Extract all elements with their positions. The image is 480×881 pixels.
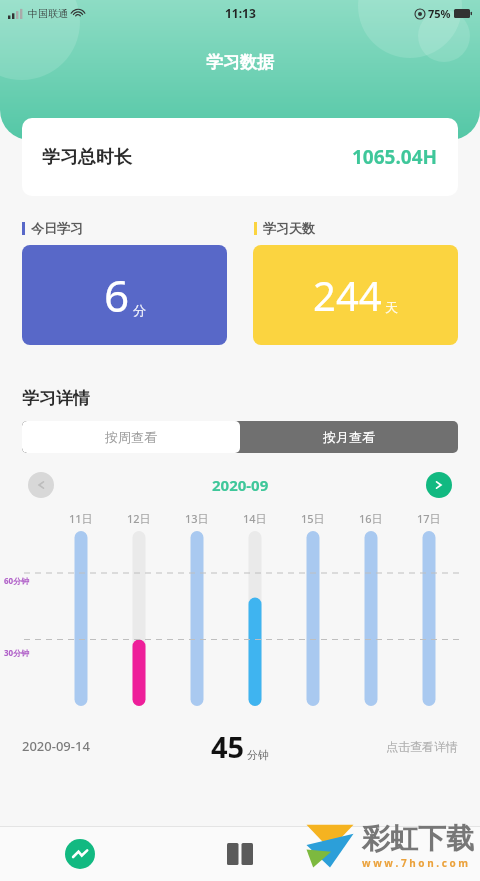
button[interactable]: 6 (22, 245, 227, 345)
button[interactable]: 2020-09-14 (22, 724, 458, 768)
staticText: 1065.04H (352, 144, 438, 170)
staticText: 中国联通 (28, 7, 68, 20)
button[interactable]: Previous month (28, 472, 54, 498)
staticText: 学习总时长 (42, 146, 132, 169)
staticText: w w w . 7 h o n . c o m (362, 856, 469, 870)
staticText: 点击查看详情 (386, 739, 458, 754)
staticText: 按月查看 (323, 429, 375, 445)
button[interactable]: 按周查看 (22, 421, 240, 453)
staticText: 分钟 (247, 748, 269, 762)
staticText: 天 (385, 299, 398, 315)
staticText: 彩虹下载 (362, 821, 474, 856)
staticText: 60分钟 (4, 575, 30, 586)
button[interactable]: Statistics (0, 827, 160, 881)
button[interactable]: Next month (426, 472, 452, 498)
staticText: 分 (133, 302, 146, 318)
button[interactable]: 学习总时长 (22, 118, 458, 196)
staticText: 学习详情 (22, 388, 90, 409)
staticText: 75% (428, 6, 451, 21)
button[interactable]: 244 (253, 245, 458, 345)
button[interactable] (320, 827, 480, 881)
staticText: 17日 (417, 511, 441, 526)
staticText: 16日 (359, 511, 383, 526)
staticText: 2020-09-14 (22, 737, 90, 755)
staticText: 244 (313, 268, 382, 322)
button[interactable]: Books (160, 827, 320, 881)
staticText: 15日 (301, 511, 325, 526)
staticText: 学习数据 (206, 52, 274, 73)
staticText: 学习天数 (263, 220, 315, 236)
staticText: 12日 (127, 511, 151, 526)
button[interactable]: 按月查看 (240, 421, 458, 453)
staticText: 按周查看 (105, 429, 157, 445)
staticText: 45 (211, 727, 245, 766)
staticText: 今日学习 (31, 220, 83, 236)
staticText: 30分钟 (4, 647, 30, 658)
staticText: 6 (104, 265, 130, 325)
staticText: 13日 (185, 511, 209, 526)
staticText: 11日 (69, 511, 93, 526)
staticText: 11:13 (225, 5, 256, 21)
staticText: 2020-09 (212, 475, 269, 495)
staticText: 14日 (243, 511, 267, 526)
